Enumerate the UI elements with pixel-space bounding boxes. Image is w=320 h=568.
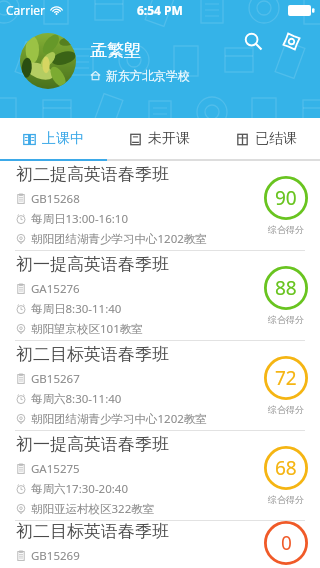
staticText: Carrier — [6, 2, 46, 18]
staticText: 已结课 — [255, 130, 297, 148]
staticText: GA15276 — [31, 281, 80, 297]
staticText: 每周日8:30-11:40 — [31, 301, 122, 317]
staticText: 初二目标英语春季班 — [16, 521, 169, 542]
button[interactable]: 初一提高英语春季班 — [0, 431, 320, 520]
staticText: 72 — [275, 365, 297, 391]
staticText: 每周日13:00-16:10 — [31, 211, 128, 227]
button[interactable]: Settings — [276, 26, 306, 56]
staticText: GB15269 — [31, 548, 80, 564]
button[interactable]: 已结课 — [213, 118, 320, 159]
staticText: 0 — [281, 530, 292, 556]
button[interactable]: 初二目标英语春季班 — [0, 341, 320, 430]
staticText: 孟繁塱 — [90, 40, 141, 61]
staticText: 90 — [275, 185, 297, 211]
button[interactable]: 初一提高英语春季班 — [0, 251, 320, 340]
button[interactable]: Search — [238, 26, 268, 56]
staticText: 68 — [275, 455, 297, 481]
staticText: 未开课 — [148, 130, 190, 148]
staticText: 初二目标英语春季班 — [16, 344, 169, 365]
staticText: 初二提高英语春季班 — [16, 164, 169, 185]
staticText: 初一提高英语春季班 — [16, 254, 169, 275]
staticText: 6:54 PM — [137, 2, 183, 18]
staticText: 综合得分 — [268, 404, 304, 415]
button[interactable]: 上课中 — [0, 118, 106, 159]
staticText: 综合得分 — [268, 224, 304, 235]
button[interactable]: 初二目标英语春季班 — [0, 521, 320, 568]
staticText: 朝阳望京校区101教室 — [31, 321, 143, 337]
staticText: 朝阳团结湖青少学习中心1202教室 — [31, 231, 207, 247]
staticText: GB15268 — [31, 191, 80, 207]
button[interactable]: 初二提高英语春季班 — [0, 161, 320, 250]
button[interactable]: 未开课 — [106, 118, 213, 159]
staticText: 初一提高英语春季班 — [16, 434, 169, 455]
staticText: 综合得分 — [268, 314, 304, 325]
staticText: 朝阳亚运村校区322教室 — [31, 501, 155, 517]
staticText: 每周六8:30-11:40 — [31, 391, 122, 407]
staticText: GB15267 — [31, 371, 80, 387]
staticText: GA15275 — [31, 461, 80, 477]
staticText: 新东方北京学校 — [106, 68, 190, 83]
staticText: 88 — [275, 275, 297, 301]
button[interactable]: Profile photo — [20, 33, 76, 89]
staticText: 综合得分 — [268, 494, 304, 505]
staticText: 上课中 — [42, 130, 84, 148]
staticText: 每周六17:30-20:40 — [31, 481, 128, 497]
staticText: 朝阳团结湖青少学习中心1202教室 — [31, 411, 207, 427]
